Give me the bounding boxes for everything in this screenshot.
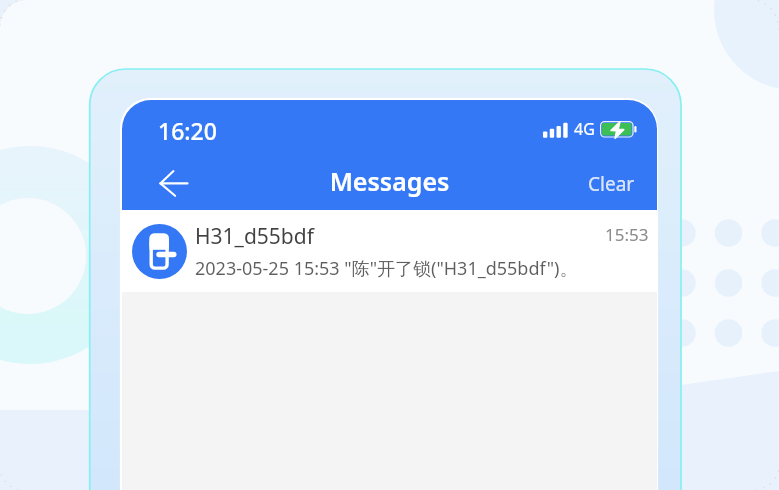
other: Signal strength [543,120,569,140]
staticText: 4G [574,118,595,140]
button[interactable]: Clear [582,167,641,201]
staticText: 16:20 [158,115,217,146]
other: Battery charging [600,121,636,139]
button[interactable]: H31_d55bdf [122,210,657,292]
staticText: H31_d55bdf [195,222,314,251]
staticText: 2023-05-25 15:53 "陈"开了锁("H31_d55bdf")。 [195,256,578,281]
staticText: Messages [122,164,657,198]
staticText: Clear [588,171,635,197]
staticText: 15:53 [605,223,649,246]
button[interactable]: Back [155,169,195,201]
